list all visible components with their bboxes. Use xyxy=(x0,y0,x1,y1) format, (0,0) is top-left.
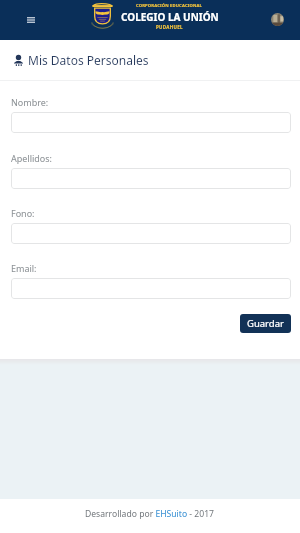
button[interactable]: Profile xyxy=(271,13,284,26)
button[interactable]: Apellidos: xyxy=(11,168,291,189)
staticText: CORPORACIÓN EDUCACIONAL xyxy=(136,3,203,9)
staticText: COLEGIO LA UNIÓN xyxy=(121,10,219,24)
button[interactable]: Nombre: xyxy=(11,112,291,133)
staticText: Fono: xyxy=(11,207,35,219)
staticText: Apellidos: xyxy=(11,152,53,164)
button[interactable]: Menu xyxy=(22,11,40,29)
staticText: Mis Datos Personales xyxy=(28,52,149,68)
button[interactable]: Email: xyxy=(11,278,291,299)
button[interactable]: Fono: xyxy=(11,223,291,244)
button[interactable]: Guardar xyxy=(240,314,291,333)
staticText: Email: xyxy=(11,262,37,274)
staticText: Desarrollado por EHSuito - 2017 xyxy=(85,508,215,520)
staticText: PUDAHUEL xyxy=(156,24,183,30)
staticText: Guardar xyxy=(247,317,284,330)
staticText: Nombre: xyxy=(11,96,49,108)
